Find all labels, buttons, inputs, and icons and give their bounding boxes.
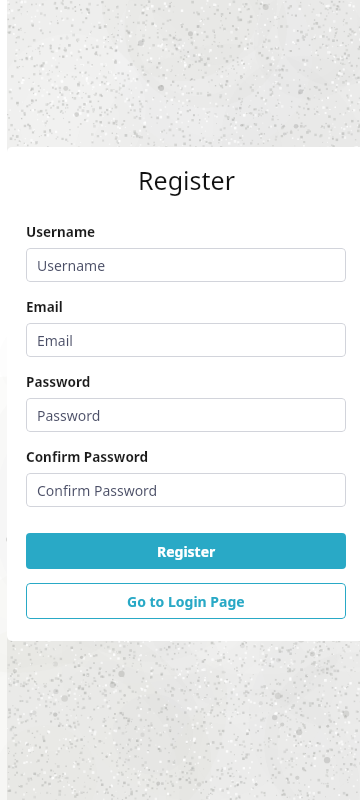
staticText: Password	[26, 373, 91, 391]
button[interactable]: Register	[26, 533, 346, 569]
staticText: Password	[37, 406, 101, 425]
staticText: Email	[26, 298, 63, 316]
staticText: Username	[37, 256, 106, 275]
staticText: Confirm Password	[37, 481, 158, 500]
staticText: Register	[138, 163, 235, 197]
button[interactable]: Email	[26, 323, 346, 357]
staticText: Go to Login Page	[127, 592, 245, 611]
staticText: Username	[26, 223, 96, 241]
button[interactable]: Username	[26, 248, 346, 282]
button[interactable]: Password	[26, 398, 346, 432]
staticText: Confirm Password	[26, 448, 149, 466]
staticText: Register	[157, 542, 216, 561]
button[interactable]: Go to Login Page	[26, 583, 346, 619]
button[interactable]: Confirm Password	[26, 473, 346, 507]
staticText: Email	[37, 331, 73, 350]
